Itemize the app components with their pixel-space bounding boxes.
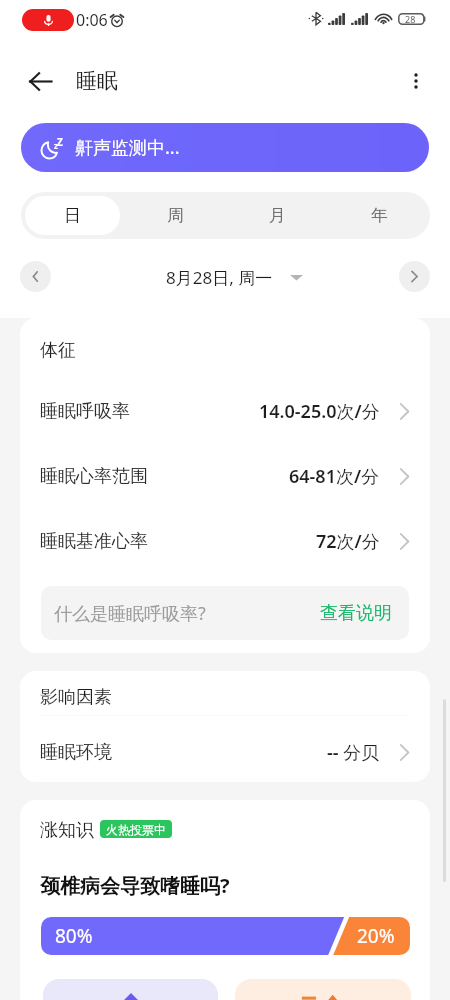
staticText: 涨知识 <box>40 819 94 842</box>
staticText: 8月28日, 周一 <box>166 266 273 289</box>
staticText: 月 <box>269 205 286 226</box>
staticText: 查看说明 <box>320 602 392 625</box>
staticText: 鼾声监测中... <box>75 135 180 160</box>
button[interactable]: 月 <box>230 196 324 235</box>
button[interactable]: 什么是睡眠呼吸率? <box>41 586 409 640</box>
staticText: 80% <box>55 923 93 949</box>
button[interactable] <box>235 979 411 1000</box>
button[interactable]: 睡眠心率范围 <box>40 448 414 504</box>
staticText: 什么是睡眠呼吸率? <box>54 601 206 626</box>
staticText: 睡眠 <box>76 68 118 94</box>
staticText: 睡眠心率范围 <box>40 465 148 488</box>
button[interactable]: 周 <box>128 196 222 235</box>
staticText: 颈椎病会导致嗜睡吗? <box>40 872 230 899</box>
button[interactable]: 睡眠环境 <box>40 724 414 780</box>
button[interactable]: More options <box>394 59 438 103</box>
staticText: 64-81次/分 <box>289 464 380 489</box>
staticText: z <box>54 140 58 151</box>
staticText: 体征 <box>40 339 76 362</box>
button[interactable]: Back <box>18 59 62 103</box>
staticText: 火热投票中 <box>106 822 166 837</box>
button[interactable]: 年 <box>332 196 426 235</box>
button[interactable]: 睡眠呼吸率 <box>40 383 414 439</box>
button[interactable]: z <box>21 123 429 172</box>
staticText: 年 <box>371 205 388 226</box>
staticText: 28 <box>405 13 416 25</box>
staticText: 72次/分 <box>316 529 380 554</box>
staticText: 周 <box>167 205 184 226</box>
staticText: 0:06 <box>76 9 108 31</box>
button[interactable] <box>43 979 218 1000</box>
button[interactable]: 日 <box>25 196 120 235</box>
staticText: 日 <box>64 205 81 226</box>
staticText: 14.0-25.0次/分 <box>259 399 380 424</box>
button[interactable]: 80% <box>41 917 410 955</box>
button[interactable]: Previous day <box>20 261 51 292</box>
staticText: Z <box>57 135 63 149</box>
staticText: -- 分贝 <box>327 740 380 765</box>
staticText: 20% <box>357 923 395 949</box>
button[interactable]: 睡眠基准心率 <box>40 513 414 569</box>
staticText: 睡眠呼吸率 <box>40 400 130 423</box>
staticText: 睡眠环境 <box>40 741 112 764</box>
staticText: 影响因素 <box>40 686 112 709</box>
staticText: 睡眠基准心率 <box>40 530 148 553</box>
button[interactable]: Next day <box>399 261 430 292</box>
